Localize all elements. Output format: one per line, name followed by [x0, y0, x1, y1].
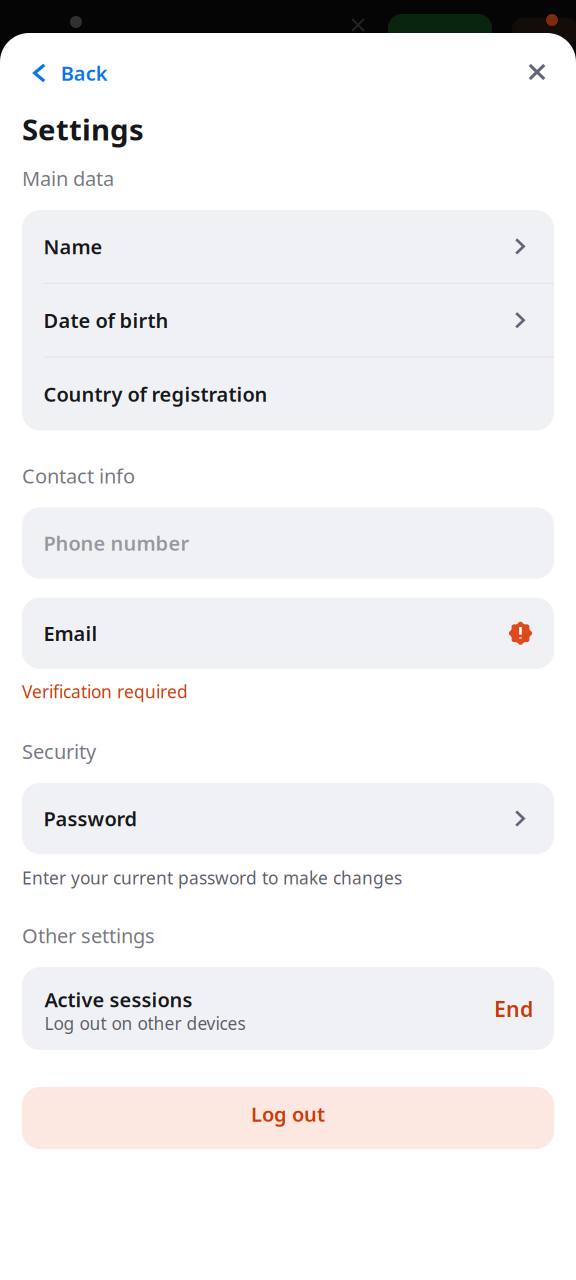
staticText: End — [494, 994, 533, 1023]
staticText: Password — [43, 805, 137, 832]
staticText: Email — [43, 620, 97, 647]
staticText: Other settings — [22, 922, 155, 949]
staticText: Date of birth — [43, 307, 168, 333]
staticText: Log out — [251, 1101, 325, 1127]
button[interactable]: Log out — [22, 1087, 554, 1149]
staticText: Verification required — [22, 680, 188, 703]
staticText: Phone number — [43, 530, 189, 556]
button[interactable]: Date of birth — [22, 284, 554, 357]
staticText: Main data — [22, 165, 114, 192]
button[interactable]: Password — [22, 783, 554, 854]
staticText: Log out on other devices — [44, 1012, 245, 1035]
button[interactable]: Active sessions — [22, 967, 554, 1050]
staticText: Country of registration — [43, 381, 267, 407]
staticText: Active sessions — [44, 986, 192, 1013]
staticText: Security — [22, 738, 96, 764]
button[interactable]: Back — [22, 59, 122, 103]
button[interactable]: Email — [22, 598, 554, 669]
button[interactable]: Close — [515, 59, 559, 103]
button[interactable]: Country of registration — [22, 358, 554, 430]
staticText: Back — [61, 60, 108, 86]
staticText: Name — [43, 233, 102, 260]
staticText: Settings — [22, 109, 144, 148]
staticText: Contact info — [22, 462, 135, 489]
button[interactable]: Name — [22, 210, 554, 283]
staticText: Enter your current password to make chan… — [22, 866, 402, 889]
button[interactable]: Phone number — [22, 507, 554, 579]
